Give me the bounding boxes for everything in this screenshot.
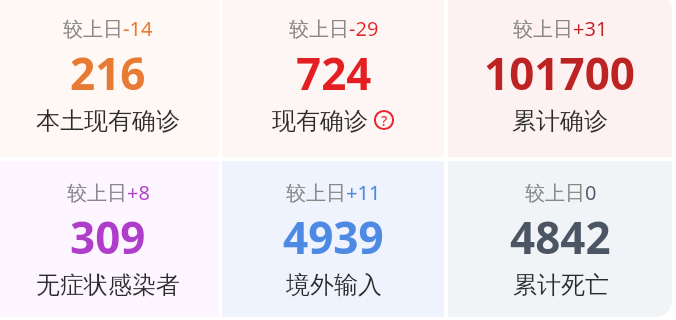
staticText: 较上日-14 [63,15,153,42]
staticText: 216 [70,43,146,103]
staticText: 较上日+11 [286,179,381,206]
staticText: 较上日+31 [513,15,608,42]
button[interactable]: Help [374,110,394,130]
button[interactable]: 较上日0 [448,161,672,317]
staticText: 本土现有确诊 [36,106,180,136]
staticText: 101700 [484,43,636,103]
button[interactable]: 较上日+11 [222,161,444,317]
staticText: 较上日0 [525,179,597,206]
staticText: 现有确诊 [272,106,368,136]
staticText: 累计死亡 [513,270,609,300]
button[interactable]: 较上日-14 [0,0,219,157]
staticText: 309 [70,207,146,267]
staticText: ? [381,111,388,130]
staticText: 境外输入 [286,270,382,300]
staticText: 累计确诊 [512,106,608,136]
staticText: 较上日+8 [67,179,150,206]
button[interactable]: 较上日+31 [448,0,672,157]
staticText: 较上日-29 [289,15,379,42]
staticText: 4939 [283,207,384,267]
button[interactable]: 较上日-29 [222,0,444,157]
staticText: 724 [296,43,372,103]
button[interactable]: 较上日+8 [0,161,219,317]
staticText: 无症状感染者 [36,270,180,300]
staticText: 4842 [510,207,611,267]
